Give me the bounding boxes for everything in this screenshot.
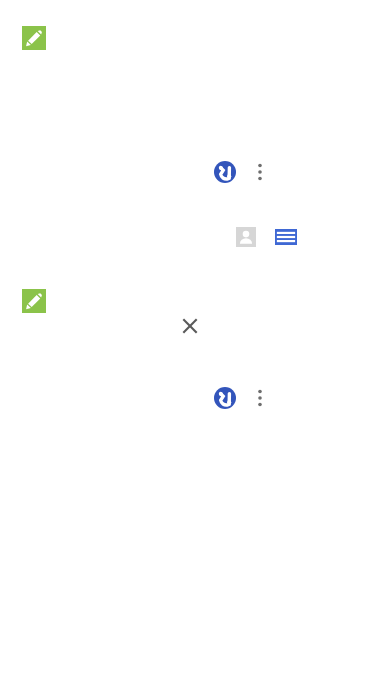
button[interactable]: Contact photo bbox=[236, 227, 256, 247]
button[interactable]: Edit bbox=[22, 289, 46, 313]
button[interactable]: More options bbox=[252, 160, 268, 184]
button[interactable]: More options bbox=[252, 386, 268, 410]
button[interactable]: Call bbox=[214, 161, 236, 183]
button[interactable]: Edit bbox=[22, 26, 46, 50]
button[interactable]: List view bbox=[275, 229, 297, 245]
button[interactable]: Call bbox=[214, 387, 236, 409]
button[interactable]: Close bbox=[180, 316, 200, 336]
